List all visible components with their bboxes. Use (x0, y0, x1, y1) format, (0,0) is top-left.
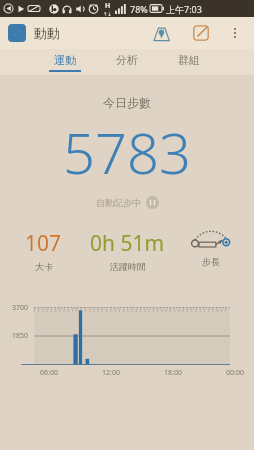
staticText: 3700 (12, 303, 29, 313)
button[interactable]: 群組 (169, 49, 209, 75)
button[interactable]: 0h 51m (81, 229, 174, 272)
staticText: 00:00 (226, 368, 244, 378)
staticText: 78% (130, 3, 148, 15)
button[interactable]: Edit (188, 20, 214, 46)
staticText: 大卡 (35, 261, 53, 272)
staticText: 活躍時間 (110, 261, 146, 272)
staticText: 18:00 (164, 368, 182, 378)
staticText: 自動記步中 (96, 197, 141, 208)
staticText: 上午7:03 (166, 3, 202, 15)
staticText: 運動 (54, 53, 76, 67)
staticText: 107 (25, 229, 62, 258)
staticText: 步長 (202, 256, 220, 267)
staticText: 0h 51m (90, 229, 165, 258)
staticText: H (105, 1, 111, 11)
staticText: 今日步數 (0, 95, 254, 110)
button[interactable]: 自動記步中 (0, 196, 254, 209)
staticText: 群組 (178, 53, 200, 67)
button[interactable]: Map (148, 20, 174, 46)
button[interactable]: 107 (6, 229, 81, 272)
button[interactable]: 分析 (107, 49, 147, 75)
staticText: 5783 (0, 114, 254, 190)
staticText: 06:00 (40, 368, 58, 378)
button[interactable]: More options (224, 22, 246, 44)
staticText: 12:00 (102, 368, 120, 378)
button[interactable]: Stride length (174, 229, 248, 267)
button[interactable]: App logo (8, 24, 26, 42)
button[interactable]: 運動 (45, 49, 85, 75)
other: Pause (146, 196, 159, 209)
staticText: 動動 (34, 25, 60, 41)
other: Stride length (191, 231, 231, 251)
staticText: 分析 (116, 53, 138, 67)
staticText: 1850 (12, 331, 29, 341)
staticText: ↑↓ (103, 11, 112, 17)
